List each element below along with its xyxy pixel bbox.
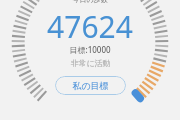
- staticText: 今日の歩数: [72, 0, 108, 4]
- staticText: 非常に活動: [70, 58, 111, 68]
- staticText: 47624: [47, 6, 133, 40]
- staticText: 私の目標: [72, 80, 109, 91]
- staticText: 目標:10000: [69, 44, 111, 55]
- button[interactable]: 私の目標: [55, 76, 126, 95]
